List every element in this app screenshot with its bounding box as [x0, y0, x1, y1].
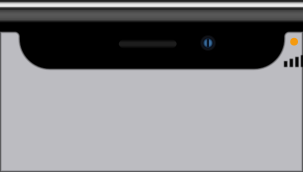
button[interactable]: Microphone in use	[0, 0, 303, 172]
button[interactable]: Cellular signal strength	[0, 0, 303, 172]
